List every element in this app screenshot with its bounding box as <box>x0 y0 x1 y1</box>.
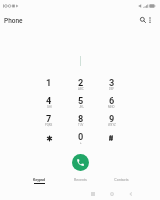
button[interactable]: Call <box>72 154 89 171</box>
staticText: 4 <box>46 95 52 106</box>
button[interactable]: 2 <box>65 77 96 95</box>
staticText: 2 <box>78 77 84 88</box>
button[interactable]: 3 <box>96 77 127 95</box>
staticText: + <box>80 141 82 144</box>
button[interactable] <box>96 131 127 149</box>
button[interactable]: 1 <box>33 77 65 95</box>
button[interactable]: Back <box>126 189 136 199</box>
staticText: 6 <box>109 95 115 106</box>
staticText: Recents <box>74 178 87 182</box>
staticText: 5 <box>78 95 84 106</box>
staticText: Phone <box>4 17 23 25</box>
button[interactable]: Home <box>107 189 117 199</box>
button[interactable]: 6 <box>96 95 127 113</box>
staticText: TUV <box>78 123 84 126</box>
staticText: PQRS <box>45 123 53 126</box>
staticText: 8 <box>78 113 84 124</box>
button[interactable]: Keypad <box>18 178 60 190</box>
button[interactable]: More options <box>143 13 156 26</box>
staticText: Keypad <box>33 178 45 182</box>
button[interactable] <box>33 131 65 149</box>
staticText: WXYZ <box>108 123 116 126</box>
staticText: 7 <box>46 113 52 124</box>
staticText: ABC <box>78 87 84 90</box>
button[interactable]: 9 <box>96 113 127 131</box>
button[interactable]: Contacts <box>101 178 142 190</box>
button[interactable]: 7 <box>33 113 65 131</box>
staticText: DEF <box>109 87 115 90</box>
staticText: JKL <box>79 105 84 108</box>
button[interactable]: Recents <box>60 178 101 190</box>
button[interactable]: 5 <box>65 95 96 113</box>
staticText: 3 <box>109 77 115 88</box>
button[interactable]: Recent apps <box>88 189 98 199</box>
staticText: 9 <box>109 113 115 124</box>
button[interactable]: 8 <box>65 113 96 131</box>
staticText: 1 <box>46 77 52 88</box>
staticText: 0 <box>78 131 84 142</box>
staticText: GHI <box>47 105 52 108</box>
staticText: Contacts <box>114 178 129 182</box>
button[interactable]: Search <box>136 13 149 26</box>
staticText: MNO <box>108 105 115 108</box>
button[interactable]: 4 <box>33 95 65 113</box>
button[interactable]: 0 <box>65 131 96 149</box>
